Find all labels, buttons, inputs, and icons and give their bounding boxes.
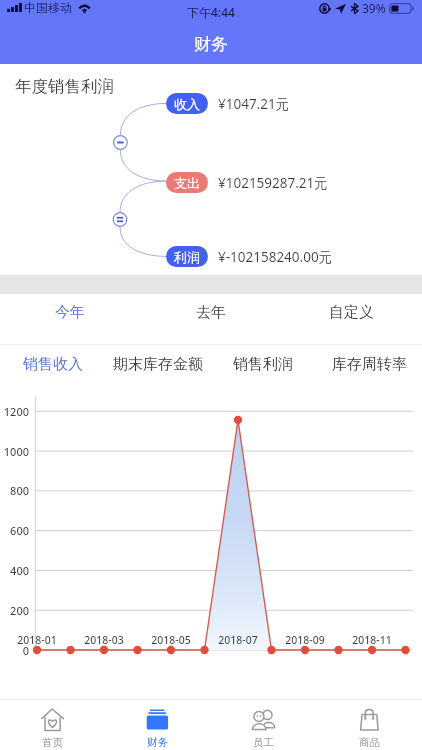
staticText: 中国移动	[24, 0, 72, 15]
staticText: 39%	[362, 0, 386, 16]
staticText: 商品	[359, 736, 380, 749]
staticText: 400	[0, 563, 29, 578]
staticText: 200	[0, 603, 29, 618]
button[interactable]: 今年	[0, 294, 140, 344]
staticText: 今年	[55, 303, 85, 322]
button[interactable]: 销售收入	[0, 345, 105, 390]
staticText: 2018-11	[342, 633, 402, 647]
staticText: 首页	[42, 736, 63, 749]
button[interactable]: 首页	[0, 700, 105, 750]
staticText: 期末库存金额	[113, 355, 203, 374]
button[interactable]: 员工	[210, 700, 316, 750]
staticText: 1000	[0, 444, 29, 459]
staticText: 2018-07	[208, 633, 268, 647]
staticText: 销售利润	[233, 355, 293, 374]
staticText: 财务	[147, 736, 168, 749]
button[interactable]: 期末库存金额	[105, 345, 210, 390]
staticText: 收入	[174, 96, 200, 112]
staticText: 2018-01	[7, 633, 67, 647]
button[interactable]: 自定义	[281, 294, 422, 344]
staticText: 2018-03	[74, 633, 134, 647]
staticText: 年度销售利润	[15, 76, 114, 97]
staticText: 2018-09	[275, 633, 335, 647]
staticText: 去年	[196, 303, 226, 322]
staticText: 0	[0, 643, 29, 658]
staticText: 财务	[194, 34, 228, 55]
staticText: 1200	[0, 404, 29, 419]
staticText: 600	[0, 523, 29, 538]
staticText: ¥102159287.21元	[218, 174, 328, 192]
staticText: 800	[0, 483, 29, 498]
button[interactable]: 财务	[105, 700, 210, 750]
button[interactable]: 销售利润	[210, 345, 316, 390]
button[interactable]: 商品	[316, 700, 422, 750]
staticText: 2018-05	[141, 633, 201, 647]
staticText: 支出	[174, 175, 200, 191]
button[interactable]: 库存周转率	[316, 345, 422, 390]
staticText: ¥-102158240.00元	[218, 248, 333, 266]
button[interactable]: 去年	[140, 294, 281, 344]
staticText: 自定义	[329, 303, 374, 322]
staticText: 利润	[174, 249, 200, 265]
staticText: 下午4:44	[187, 4, 235, 20]
staticText: 库存周转率	[332, 355, 407, 374]
staticText: 销售收入	[23, 355, 83, 374]
staticText: ¥1047.21元	[218, 95, 290, 113]
staticText: 员工	[253, 736, 274, 749]
